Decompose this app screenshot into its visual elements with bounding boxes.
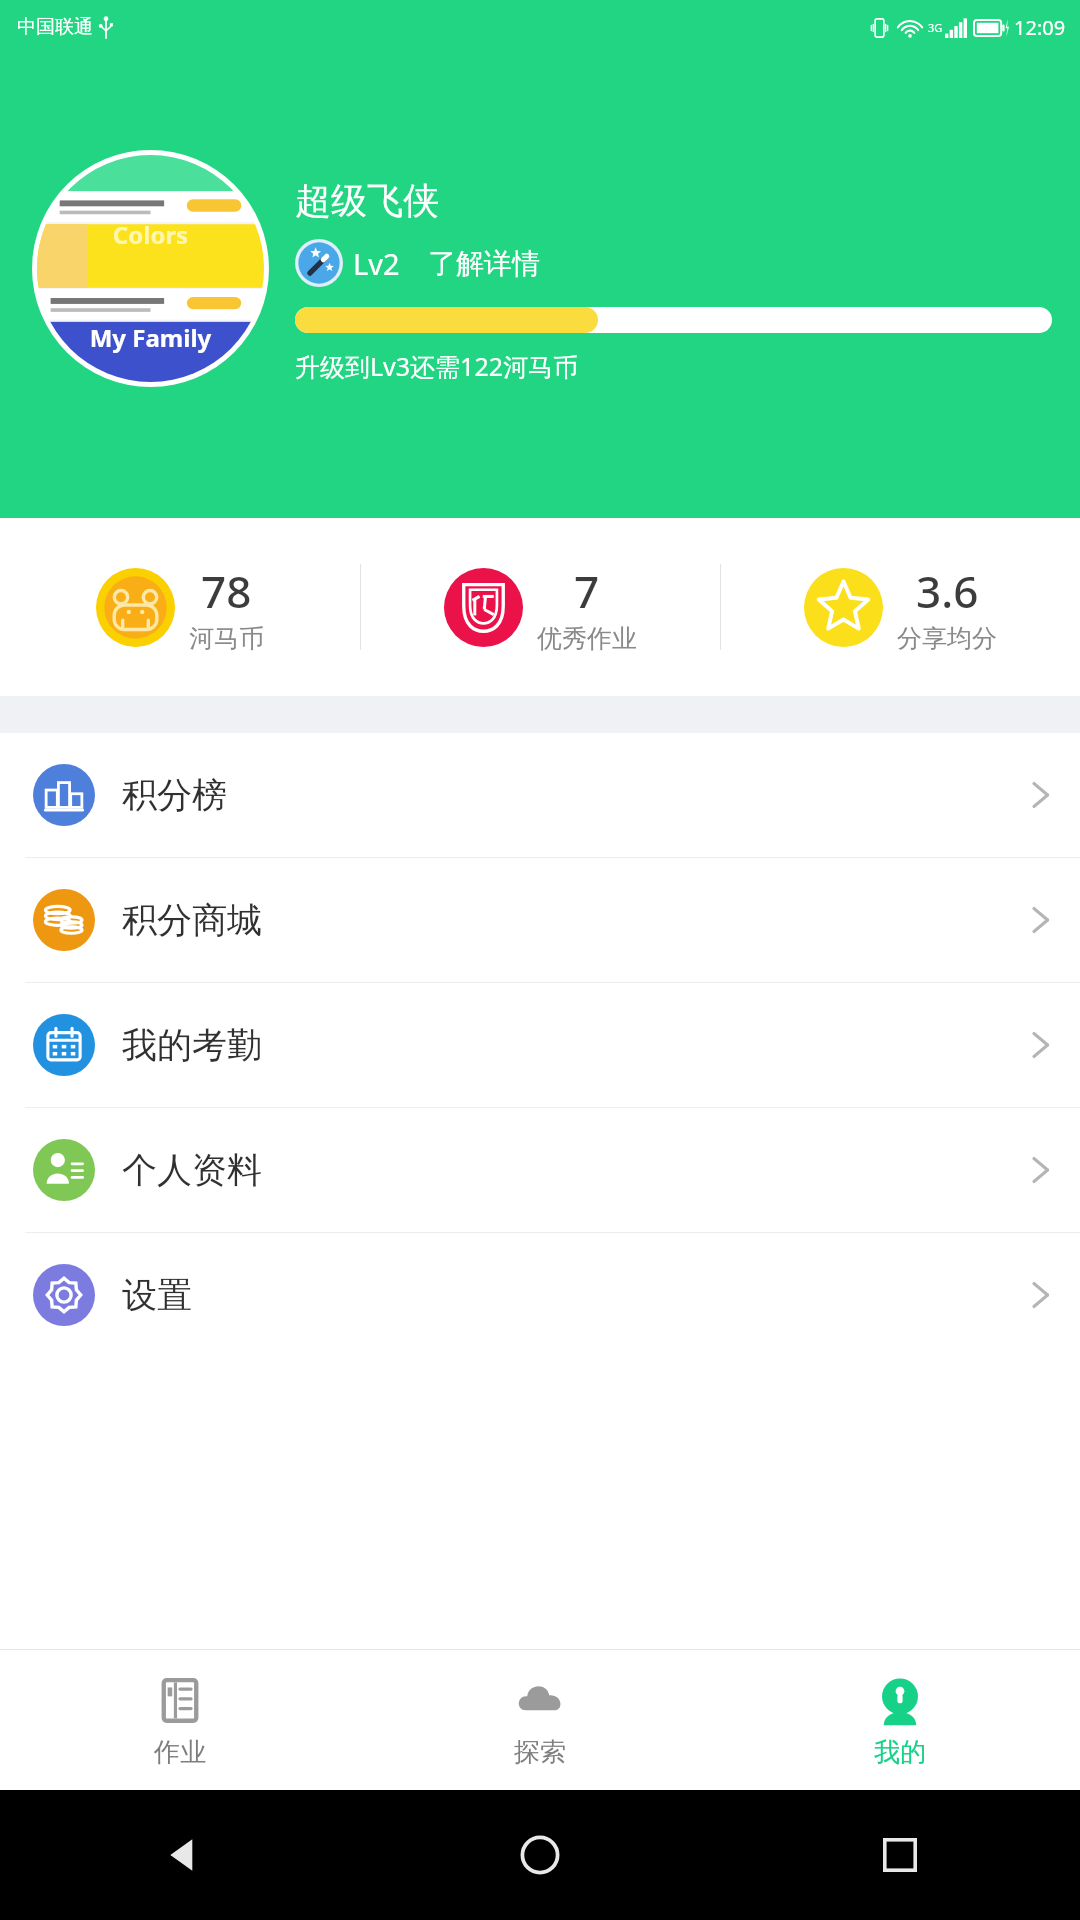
staticText: 分享均分 — [897, 623, 997, 654]
button[interactable]: 作业 — [0, 1650, 360, 1790]
staticText: 7 — [574, 561, 600, 621]
button[interactable]: Level badge — [295, 239, 540, 287]
staticText: 积分榜 — [122, 773, 227, 817]
staticText: 作业 — [154, 1736, 206, 1769]
button[interactable]: 积分榜 — [0, 733, 1080, 857]
button[interactable]: 探索 — [360, 1650, 720, 1790]
button[interactable]: 积分商城 — [0, 858, 1080, 982]
button[interactable]: 7 — [361, 518, 720, 696]
button[interactable]: 3.6 — [721, 518, 1080, 696]
button[interactable]: Recents — [720, 1790, 1080, 1920]
staticText: 3G — [928, 20, 943, 35]
staticText: 3.6 — [916, 561, 979, 621]
staticText: 升级到Lv3还需122河马币 — [295, 349, 579, 383]
button[interactable]: 个人资料 — [0, 1108, 1080, 1232]
button[interactable]: Home — [360, 1790, 720, 1920]
staticText: 超级飞侠 — [295, 178, 439, 223]
button[interactable]: Avatar — [37, 155, 264, 382]
staticText: 个人资料 — [122, 1148, 262, 1192]
staticText: Lv2 — [353, 244, 400, 283]
staticText: 78 — [201, 561, 252, 621]
staticText: 了解详情 — [428, 246, 540, 281]
other: Level badge — [295, 239, 343, 287]
staticText: 12:09 — [1014, 14, 1066, 41]
staticText: 设置 — [122, 1273, 192, 1317]
staticText: 探索 — [514, 1736, 566, 1769]
button[interactable]: 78 — [0, 518, 360, 696]
button[interactable]: 设置 — [0, 1233, 1080, 1357]
staticText: 积分商城 — [122, 898, 262, 942]
staticText: My Family — [37, 321, 264, 354]
staticText: 河马币 — [189, 623, 264, 654]
button[interactable]: 我的考勤 — [0, 983, 1080, 1107]
staticText: 我的考勤 — [122, 1023, 262, 1067]
staticText: Colors — [37, 218, 264, 251]
button[interactable]: 我的 — [720, 1650, 1080, 1790]
staticText: 中国联通 — [17, 15, 93, 39]
staticText: 我的 — [874, 1736, 926, 1769]
button[interactable]: Back — [0, 1790, 360, 1920]
staticText: 优秀作业 — [537, 623, 637, 654]
